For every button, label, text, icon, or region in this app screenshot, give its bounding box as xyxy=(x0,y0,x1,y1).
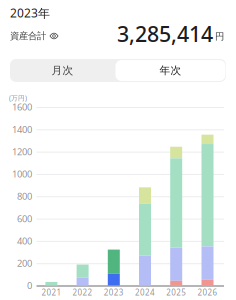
button[interactable]: 年次 xyxy=(115,59,226,82)
staticText: 1600 xyxy=(12,101,32,113)
staticText: 0 xyxy=(27,279,32,292)
button[interactable]: 月次 xyxy=(10,59,115,82)
staticText: 200 xyxy=(17,257,32,269)
staticText: 2023年 xyxy=(10,5,50,21)
staticText: 1400 xyxy=(12,123,32,135)
staticText: (万円) xyxy=(9,94,27,102)
staticText: 1000 xyxy=(12,168,32,180)
staticText: 2024 xyxy=(135,287,155,298)
staticText: 1200 xyxy=(12,145,32,158)
staticText: 800 xyxy=(17,190,32,202)
staticText: 2025 xyxy=(166,287,186,298)
staticText: 400 xyxy=(17,235,32,247)
staticText: 2023 xyxy=(104,287,124,298)
staticText: 2022 xyxy=(73,287,93,298)
staticText: 3,285,414 xyxy=(117,20,213,48)
staticText: 円 xyxy=(215,30,224,42)
staticText: 2026 xyxy=(197,287,217,298)
staticText: 資産合計 xyxy=(10,30,46,42)
staticText: 年次 xyxy=(159,64,181,77)
staticText: 2021 xyxy=(41,287,61,298)
staticText: 月次 xyxy=(51,64,73,77)
button[interactable]: 資産合計を表示 xyxy=(10,30,58,42)
staticText: 600 xyxy=(17,212,32,225)
